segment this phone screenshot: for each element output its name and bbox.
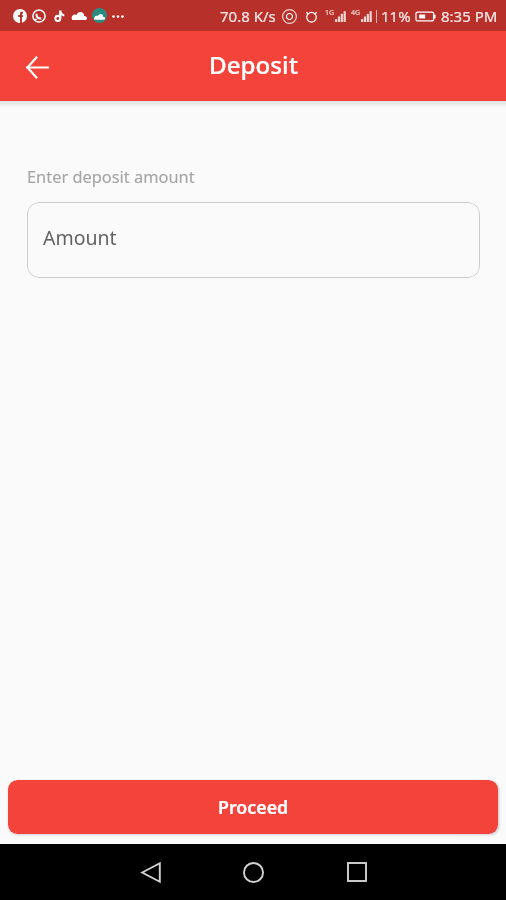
staticText: Enter deposit amount (27, 165, 195, 187)
button[interactable]: Proceed (8, 780, 498, 834)
staticText: 70.8 K/s (220, 6, 276, 26)
staticText: 4G (351, 8, 361, 18)
button[interactable]: Recents (333, 848, 381, 896)
button[interactable]: Amount (27, 202, 480, 278)
button[interactable]: Back (15, 45, 59, 89)
staticText: Amount (43, 224, 117, 251)
button[interactable]: Back (127, 848, 175, 896)
staticText: 1G (325, 8, 335, 18)
staticText: 8:35 PM (441, 6, 498, 26)
button[interactable]: Home (229, 848, 277, 896)
staticText: Proceed (218, 795, 289, 819)
staticText: Deposit (209, 48, 298, 81)
staticText: 11% (381, 6, 411, 26)
